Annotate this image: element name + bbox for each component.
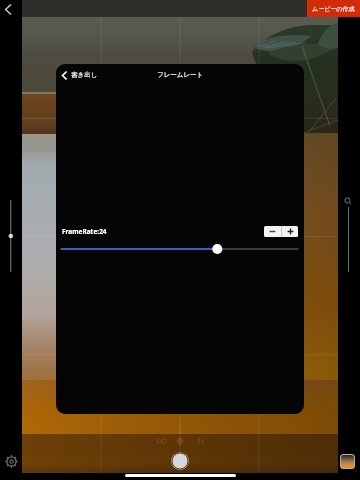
button[interactable]: Back: [0, 0, 20, 20]
staticText: FrameRate:24: [62, 227, 107, 236]
button[interactable]: Decrease: [264, 226, 281, 237]
button[interactable]: Gallery: [341, 455, 354, 468]
button[interactable]: Increase: [282, 226, 298, 237]
button[interactable]: [56, 242, 304, 256]
staticText: フレームレート: [157, 71, 204, 79]
button[interactable]: 書き出し: [61, 64, 98, 86]
button[interactable]: ムービーの作成: [307, 0, 360, 17]
button[interactable]: Shutter: [171, 452, 189, 470]
staticText: ムービーの作成: [312, 5, 355, 13]
staticText: 書き出し: [71, 71, 98, 79]
button[interactable]: Settings: [4, 454, 19, 469]
